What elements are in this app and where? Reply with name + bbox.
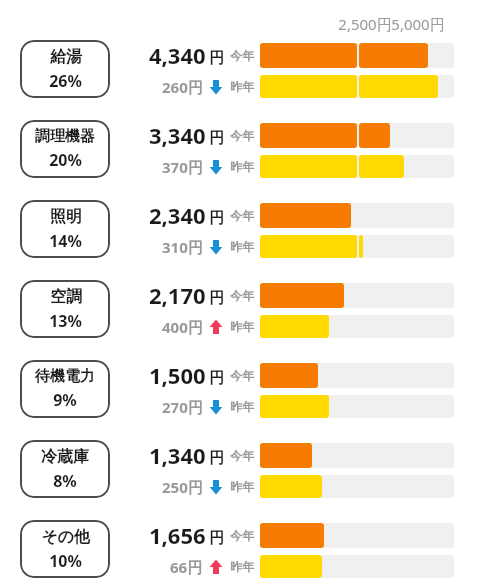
staticText: 今年 — [230, 48, 254, 63]
other: Increase — [208, 559, 224, 575]
other: Increase — [208, 319, 224, 335]
button[interactable]: 照明 — [0, 194, 480, 264]
staticText: 66円 — [170, 557, 203, 577]
staticText: 370円 — [162, 157, 203, 177]
staticText: 13% — [49, 310, 82, 332]
staticText: 3,340 — [149, 120, 206, 150]
button[interactable]: 調理機器 — [0, 114, 480, 184]
staticText: 冷蔵庫 — [41, 447, 89, 467]
button[interactable]: その他 — [0, 514, 480, 584]
staticText: 給湯 — [50, 47, 82, 67]
staticText: 270円 — [162, 397, 203, 417]
button[interactable]: 待機電力 — [0, 354, 480, 424]
staticText: 260円 — [162, 77, 203, 97]
button[interactable]: 給湯 — [0, 34, 480, 104]
staticText: 昨年 — [230, 479, 254, 494]
button[interactable]: 空調 — [20, 280, 110, 338]
staticText: 今年 — [230, 448, 254, 463]
staticText: 昨年 — [230, 399, 254, 414]
staticText: 昨年 — [230, 159, 254, 174]
staticText: 今年 — [230, 528, 254, 543]
button[interactable]: 空調 — [0, 274, 480, 344]
staticText: 4,340 — [149, 40, 206, 70]
staticText: 昨年 — [230, 79, 254, 94]
staticText: 円 — [209, 369, 224, 388]
staticText: 14% — [49, 230, 82, 252]
button[interactable]: 調理機器 — [20, 120, 110, 178]
staticText: 5,000円 — [366, 14, 470, 34]
staticText: 今年 — [230, 368, 254, 383]
staticText: 10% — [49, 550, 82, 572]
staticText: 8% — [53, 470, 77, 492]
staticText: 昨年 — [230, 239, 254, 254]
button[interactable]: その他 — [20, 520, 110, 578]
staticText: 250円 — [162, 477, 203, 497]
button[interactable]: 給湯 — [20, 40, 110, 98]
staticText: 2,500円 — [313, 14, 417, 34]
staticText: 円 — [209, 49, 224, 68]
other: Decrease — [208, 479, 224, 495]
staticText: 26% — [49, 70, 82, 92]
staticText: 今年 — [230, 288, 254, 303]
staticText: 400円 — [162, 317, 203, 337]
button[interactable]: 照明 — [20, 200, 110, 258]
staticText: 円 — [209, 129, 224, 148]
staticText: 2,340 — [149, 200, 206, 230]
staticText: 円 — [209, 209, 224, 228]
button[interactable]: 待機電力 — [20, 360, 110, 418]
other: Decrease — [208, 79, 224, 95]
staticText: 2,170 — [149, 280, 206, 310]
other: Decrease — [208, 399, 224, 415]
staticText: 1,500 — [149, 360, 206, 390]
staticText: 円 — [209, 289, 224, 308]
staticText: 1,340 — [149, 440, 206, 470]
staticText: 今年 — [230, 208, 254, 223]
button[interactable]: 冷蔵庫 — [0, 434, 480, 504]
staticText: 9% — [53, 389, 77, 411]
staticText: 円 — [209, 449, 224, 468]
staticText: 調理機器 — [35, 127, 95, 146]
other: Decrease — [208, 239, 224, 255]
staticText: 照明 — [50, 207, 82, 227]
staticText: 310円 — [162, 237, 203, 257]
staticText: 20% — [49, 149, 82, 171]
staticText: 昨年 — [230, 319, 254, 334]
other: Decrease — [208, 159, 224, 175]
staticText: 今年 — [230, 128, 254, 143]
button[interactable]: 冷蔵庫 — [20, 440, 110, 498]
staticText: その他 — [41, 527, 90, 547]
staticText: 昨年 — [230, 559, 254, 574]
staticText: 1,656 — [149, 520, 206, 550]
staticText: 円 — [209, 529, 224, 548]
staticText: 空調 — [50, 287, 82, 307]
staticText: 待機電力 — [35, 367, 95, 386]
